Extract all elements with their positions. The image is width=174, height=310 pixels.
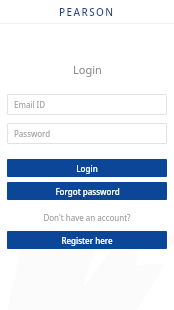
button[interactable]: Email ID bbox=[7, 94, 167, 115]
button[interactable]: Password bbox=[7, 123, 167, 144]
staticText: Register here bbox=[61, 235, 113, 246]
button[interactable]: Forgot password bbox=[7, 182, 167, 200]
staticText: Login bbox=[76, 163, 98, 174]
staticText: Login bbox=[73, 62, 102, 77]
staticText: Don't have an account? bbox=[43, 212, 131, 223]
staticText: Forgot password bbox=[55, 186, 120, 197]
button[interactable]: Login bbox=[7, 159, 167, 177]
button[interactable]: Register here bbox=[7, 231, 167, 249]
staticText: Password bbox=[14, 128, 51, 139]
staticText: PEARSON bbox=[59, 5, 115, 19]
staticText: Email ID bbox=[14, 99, 46, 110]
